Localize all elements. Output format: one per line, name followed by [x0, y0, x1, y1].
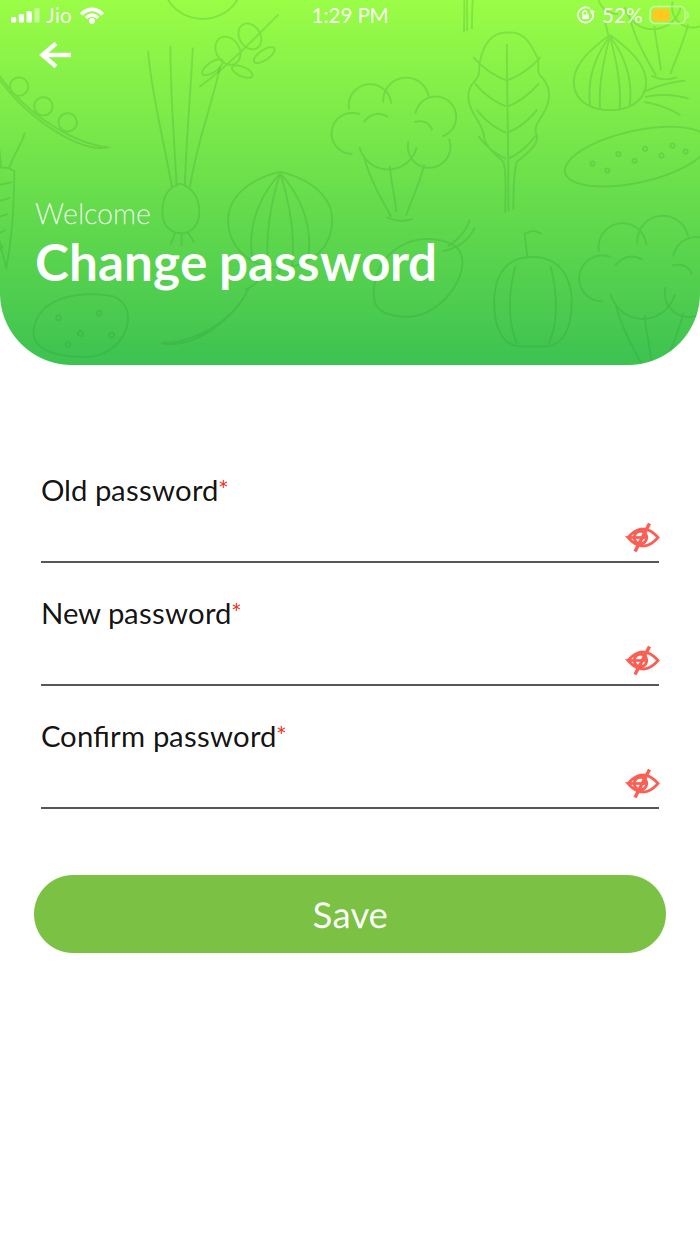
staticText: 1:29 PM	[311, 3, 388, 27]
button[interactable]: Save	[34, 875, 666, 953]
button[interactable]: Show Old password	[618, 517, 668, 558]
button[interactable]: Show New password	[618, 640, 668, 681]
staticText: Save	[312, 892, 387, 936]
staticText: *	[231, 597, 242, 627]
staticText: Confirm password	[41, 718, 276, 753]
staticText: Jio	[46, 3, 72, 27]
staticText: *	[218, 474, 229, 504]
button[interactable]: Back	[29, 30, 84, 80]
staticText: Welcome	[35, 196, 151, 230]
staticText: *	[276, 720, 287, 750]
staticText: 52%	[602, 3, 643, 27]
staticText: New password	[41, 595, 231, 630]
button[interactable]: Show Confirm password	[618, 763, 668, 804]
staticText: Old password	[41, 472, 218, 507]
staticText: Change password	[35, 230, 437, 292]
